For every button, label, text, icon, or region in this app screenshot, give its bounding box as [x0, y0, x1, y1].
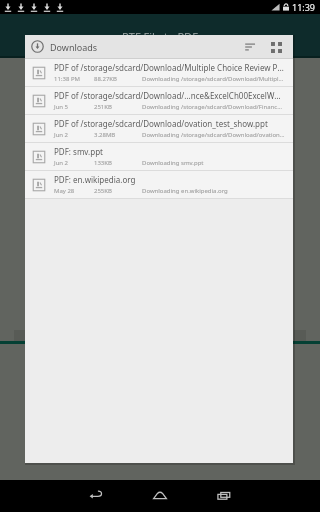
staticText: Downloading smv.ppt [142, 159, 285, 167]
button[interactable]: PDF of /storage/sdcard/Download/ovation_… [25, 115, 293, 142]
button[interactable]: Sort [239, 36, 261, 58]
staticText: 11:38 PM [54, 75, 80, 83]
staticText: 133KB [94, 159, 112, 167]
button[interactable]: Grid view [265, 36, 287, 58]
staticText: RTF File to PDF [122, 29, 198, 44]
staticText: Downloading /storage/sdcard/Download/Fin… [142, 103, 285, 111]
staticText: PDF of /storage/sdcard/Download/Multiple… [54, 62, 285, 73]
button[interactable]: PDF of /storage/sdcard/Download/Multiple… [25, 59, 293, 86]
button[interactable]: Home [136, 480, 184, 512]
button[interactable]: PDF of /storage/sdcard/Download/...nce&E… [25, 87, 293, 114]
staticText: Downloading /storage/sdcard/Download/Mul… [142, 75, 285, 83]
staticText: Downloading en.wikipedia.org [142, 187, 285, 195]
staticText: Jun 5 [54, 103, 69, 111]
button[interactable]: PDF: smv.ppt [25, 143, 293, 170]
staticText: 88.27KB [94, 75, 117, 83]
button[interactable]: Recent apps [200, 480, 248, 512]
staticText: Jun 2 [54, 159, 69, 167]
staticText: PDF of /storage/sdcard/Download/...nce&E… [54, 90, 285, 101]
staticText: May 28 [54, 187, 75, 195]
staticText: 11:39 [292, 1, 316, 13]
staticText: PDF: smv.ppt [54, 146, 103, 157]
staticText: Downloading /storage/sdcard/Download/ova… [142, 131, 285, 139]
staticText: Downloads [50, 41, 98, 53]
staticText: PDF of /storage/sdcard/Download/ovation_… [54, 118, 268, 129]
button[interactable]: Back [72, 480, 120, 512]
staticText: Jun 2 [54, 131, 69, 139]
staticText: 3.28MB [94, 131, 116, 139]
staticText: 251KB [94, 103, 112, 111]
staticText: PDF: en.wikipedia.org [54, 174, 136, 185]
button[interactable]: PDF: en.wikipedia.org [25, 171, 293, 198]
staticText: 255KB [94, 187, 112, 195]
